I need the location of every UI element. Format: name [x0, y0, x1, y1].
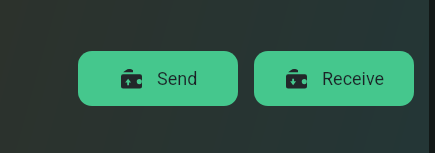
- staticText: Receive: [322, 68, 385, 89]
- button[interactable]: Send: [78, 51, 238, 106]
- button[interactable]: Receive: [254, 51, 414, 106]
- staticText: Send: [157, 68, 198, 89]
